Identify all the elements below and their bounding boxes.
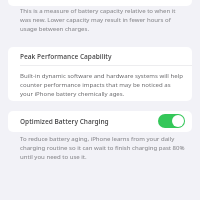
button[interactable]: Optimized Battery Charging: [8, 111, 192, 132]
button[interactable]: Peak Performance Capability: [8, 47, 192, 65]
staticText: Peak Performance Capability: [20, 52, 112, 61]
button[interactable]: Optimized Battery Charging, on: [158, 114, 185, 128]
staticText: Built-in dynamic software and hardware s…: [20, 72, 185, 98]
staticText: To reduce battery aging, iPhone learns f…: [20, 135, 186, 161]
staticText: Optimized Battery Charging: [20, 117, 109, 126]
staticText: This is a measure of battery capacity re…: [20, 7, 186, 33]
